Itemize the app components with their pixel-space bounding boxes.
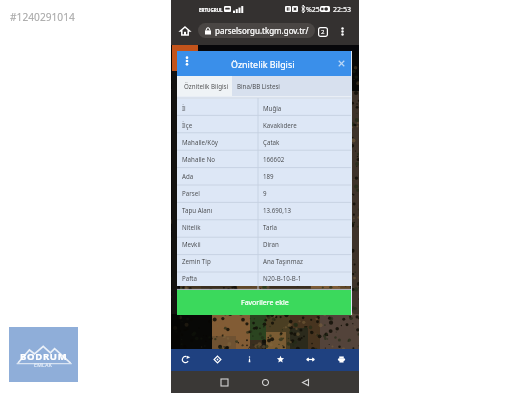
staticText: EMLAK: [34, 362, 53, 369]
staticText: 166602: [263, 155, 285, 163]
button[interactable]: parselsorgu.tkgm.gov.tr/: [198, 23, 315, 38]
button[interactable]: Ada: [177, 167, 352, 184]
button[interactable]: Home: [180, 26, 190, 36]
staticText: Nitelik: [182, 223, 201, 231]
button[interactable]: Mahalle/Köy: [177, 133, 352, 150]
staticText: 189: [263, 172, 274, 180]
button[interactable]: İl: [177, 99, 352, 116]
staticText: Ana Taşınmaz: [263, 257, 303, 265]
button[interactable]: Zemin Tip: [177, 252, 352, 269]
staticText: Favorilere ekle: [241, 298, 289, 308]
staticText: 9: [263, 189, 267, 197]
staticText: %25: [306, 5, 320, 15]
staticText: ERTUGRUL: [199, 7, 223, 13]
staticText: 22:53: [333, 5, 351, 15]
staticText: Mahalle/Köy: [182, 138, 218, 146]
staticText: İl: [182, 104, 186, 112]
staticText: Öznitelik Bilgisi: [184, 82, 229, 90]
staticText: 13.690,13: [263, 206, 292, 214]
button[interactable]: Öznitelik Bilgisi: [177, 76, 232, 96]
staticText: BODRUM: [20, 350, 68, 363]
staticText: Muğla: [263, 104, 282, 112]
staticText: Ada: [182, 172, 194, 180]
staticText: Bina/BB Listesi: [237, 82, 280, 90]
button[interactable]: Recents: [221, 379, 228, 386]
staticText: Mahalle No: [182, 155, 216, 163]
staticText: N20-B-10-B-1: [263, 274, 302, 282]
button[interactable]: Home: [262, 379, 269, 386]
staticText: Pafta: [182, 274, 198, 282]
button[interactable]: Pafta: [177, 269, 352, 286]
button[interactable]: İlçe: [177, 116, 352, 133]
staticText: Diran: [263, 240, 279, 248]
button[interactable]: More options: [337, 26, 348, 37]
button[interactable]: Refresh: [181, 355, 190, 364]
staticText: #1240291014: [10, 10, 75, 24]
staticText: Mevkii: [182, 240, 201, 248]
button[interactable]: Locate: [213, 355, 222, 364]
button[interactable]: Parsel: [177, 184, 352, 201]
staticText: 2: [321, 28, 325, 36]
staticText: Kavaklıdere: [263, 121, 297, 129]
staticText: Çatak: [263, 138, 280, 146]
button[interactable]: Favorite: [276, 355, 285, 364]
button[interactable]: Mevkii: [177, 235, 352, 252]
button[interactable]: Menu: [181, 55, 193, 67]
button[interactable]: Mahalle No: [177, 150, 352, 167]
button[interactable]: Tabs: [318, 27, 328, 37]
button[interactable]: Tapu Alanı: [177, 201, 352, 218]
button[interactable]: Print: [337, 355, 346, 364]
staticText: Tarla: [263, 223, 278, 231]
staticText: parselsorgu.tkgm.gov.tr/: [215, 25, 309, 36]
button[interactable]: Measure distance: [306, 355, 315, 364]
staticText: Parsel: [182, 189, 200, 197]
staticText: İlçe: [182, 121, 193, 129]
button[interactable]: Favorilere ekle: [177, 290, 352, 315]
button[interactable]: Bina/BB Listesi: [232, 76, 292, 96]
button[interactable]: Back: [302, 379, 309, 386]
button[interactable]: Close: [336, 58, 347, 69]
button[interactable]: Info: [245, 355, 254, 364]
button[interactable]: Bodrum Emlak logo: [9, 327, 78, 382]
staticText: Öznitelik Bilgisi: [231, 58, 295, 70]
button[interactable]: Nitelik: [177, 218, 352, 235]
staticText: Tapu Alanı: [182, 206, 213, 214]
staticText: Zemin Tip: [182, 257, 211, 265]
